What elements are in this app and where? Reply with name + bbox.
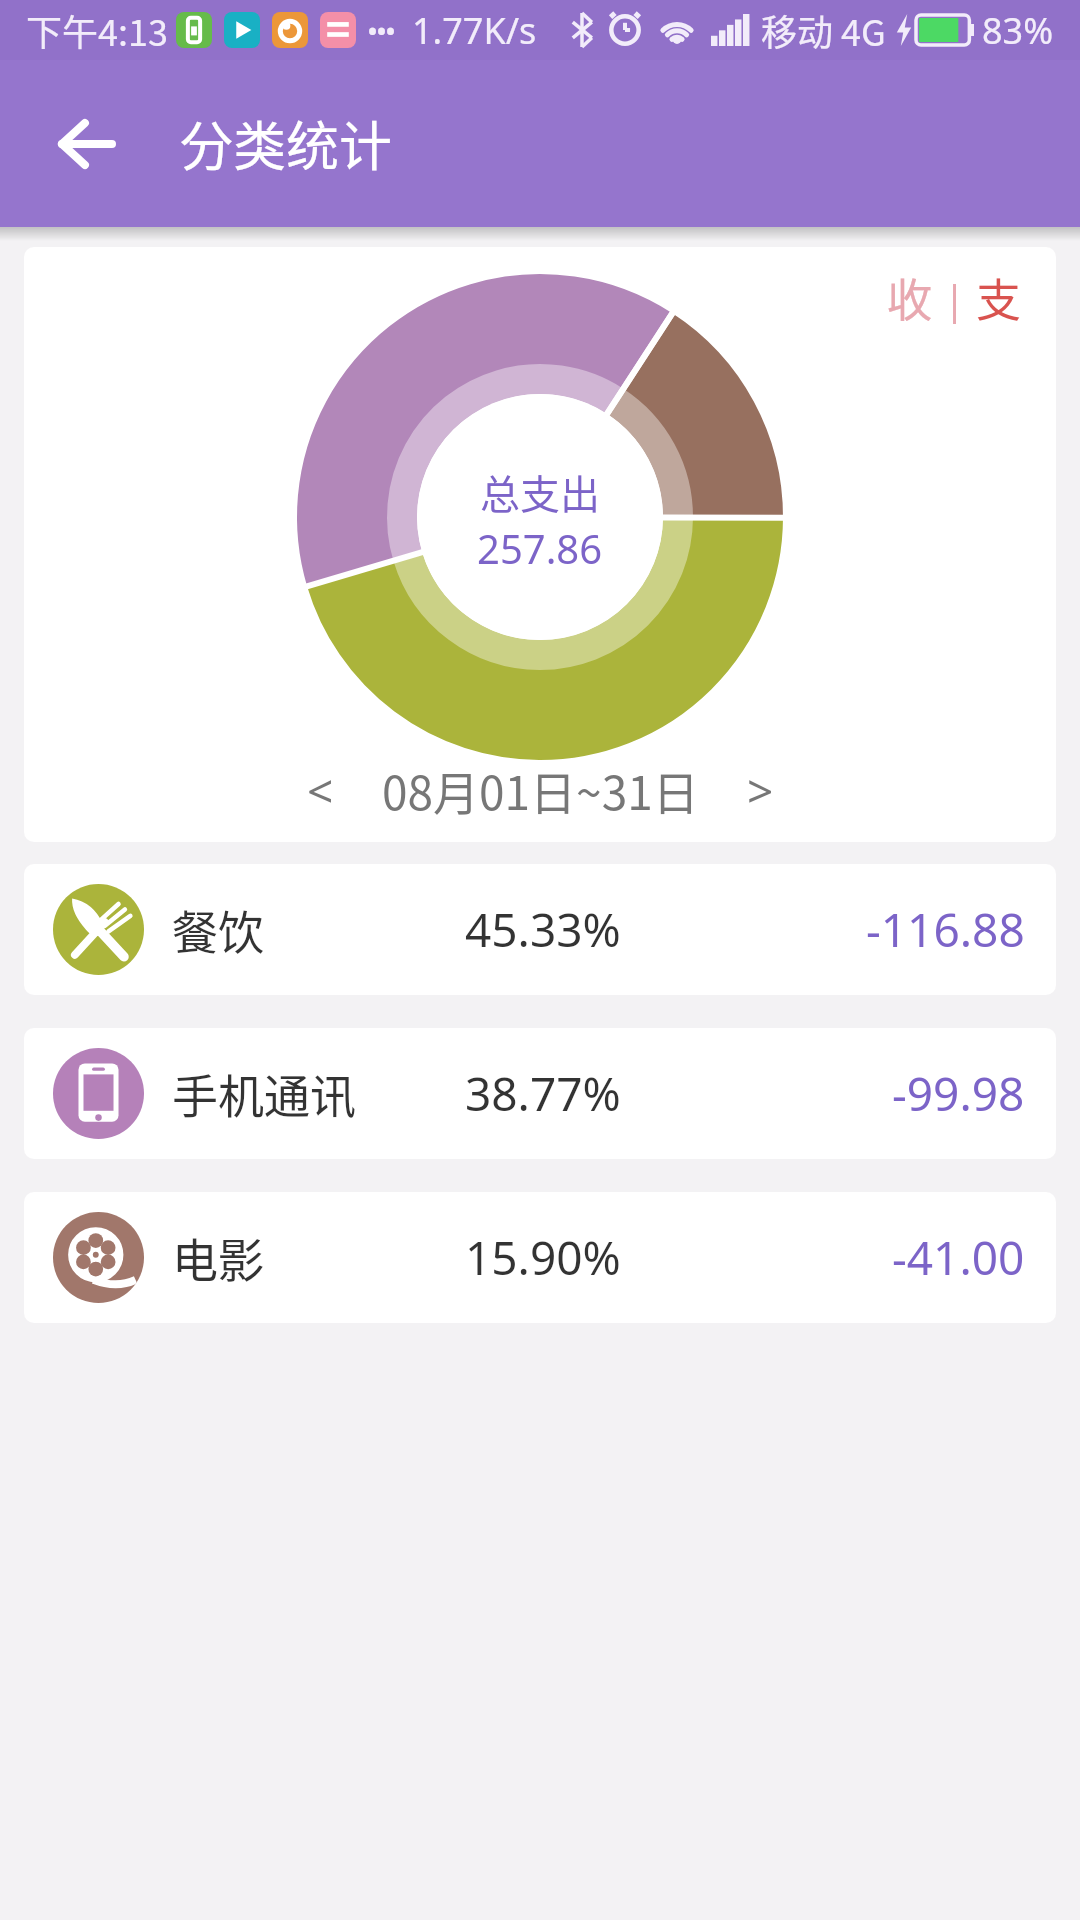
button[interactable]: 餐饮	[24, 864, 1056, 995]
staticText: 手机通讯	[172, 1060, 452, 1127]
staticText: 38.77%	[465, 1062, 621, 1125]
button[interactable]: 电影	[24, 1192, 1056, 1323]
staticText: -99.98	[892, 1062, 1025, 1125]
staticText: 1.77K/s	[412, 6, 537, 55]
staticText: 电影	[172, 1224, 452, 1291]
staticText: <	[307, 759, 334, 822]
staticText: 15.90%	[465, 1226, 621, 1289]
staticText: |	[933, 271, 976, 325]
staticText: 总支出	[480, 463, 600, 521]
staticText: 下午4:13	[26, 4, 168, 56]
staticText: •••	[368, 14, 396, 47]
button[interactable]: <	[297, 749, 344, 832]
staticText: >	[747, 759, 774, 822]
staticText: -41.00	[892, 1226, 1025, 1289]
staticText: 支	[976, 265, 1022, 330]
button[interactable]: 收	[887, 265, 1022, 330]
staticText: 收	[887, 265, 933, 330]
staticText: 08月01日~31日	[382, 757, 699, 824]
staticText: 257.86	[477, 521, 603, 575]
staticText: 移动 4G	[761, 4, 886, 56]
staticText: 餐饮	[172, 896, 452, 963]
button[interactable]	[40, 98, 132, 190]
staticText: 45.33%	[465, 898, 621, 961]
button[interactable]: >	[737, 749, 784, 832]
button[interactable]: 手机通讯	[24, 1028, 1056, 1159]
staticText: 分类统计	[180, 105, 392, 182]
staticText: 83%	[982, 6, 1054, 55]
staticText: -116.88	[866, 898, 1025, 961]
